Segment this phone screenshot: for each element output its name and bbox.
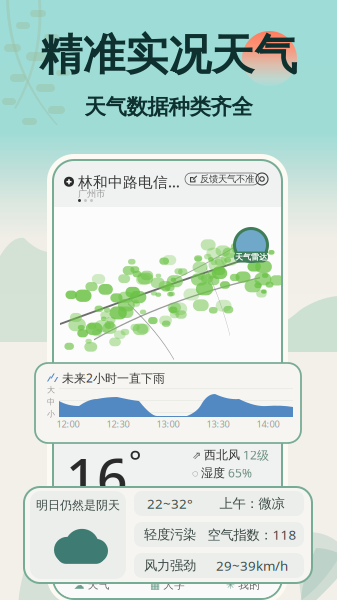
staticText: 林和中路电信… [78, 172, 180, 191]
button[interactable]: 风力强劲 [134, 553, 304, 578]
button[interactable]: 未来2小时一直下雨 [35, 363, 301, 443]
staticText: 大 [47, 385, 55, 395]
staticText: 反馈天气不准 [200, 173, 254, 185]
button[interactable]: 明日仍然是阴天 [30, 491, 126, 579]
button[interactable]: 林和中路电信… [64, 172, 180, 191]
button[interactable]: 设置 [255, 172, 269, 186]
staticText: 65% [228, 465, 252, 481]
button[interactable]: 反馈天气不准 [185, 173, 259, 185]
button[interactable]: ✳ [205, 572, 281, 598]
staticText: 13:30 [206, 418, 229, 430]
staticText: 12级 [243, 447, 269, 463]
button[interactable]: ▦ [130, 572, 205, 598]
staticText: 中 [47, 397, 55, 407]
staticText: 明日仍然是阴天 [36, 498, 120, 513]
staticText: 13:00 [156, 418, 179, 430]
staticText: 未来2小时一直下雨 [62, 370, 165, 386]
staticText: ° [129, 441, 142, 480]
staticText: 小 [47, 409, 55, 419]
staticText: 16 [66, 441, 128, 512]
staticText: 天气雷达 [235, 252, 267, 262]
staticText: 广州市 [78, 188, 105, 199]
staticText: ⇗ [192, 449, 201, 461]
staticText: 29~39km/h [216, 557, 288, 574]
staticText: 西北风 [204, 448, 240, 462]
button[interactable]: ☁ [54, 572, 130, 598]
staticText: ◌ [192, 466, 198, 480]
staticText: 我的 [238, 578, 260, 591]
staticText: 空气指数：118 [207, 526, 296, 543]
staticText: 湿度 [201, 465, 225, 480]
staticText: 风力强劲 [144, 557, 196, 574]
staticText: 上午：微凉 [219, 495, 284, 512]
staticText: 12:00 [56, 418, 79, 430]
staticText: ▦ [150, 579, 160, 591]
staticText: 14:00 [256, 418, 279, 430]
staticText: 天气数据种类齐全 [84, 94, 252, 120]
staticText: ✳ [226, 579, 235, 591]
button[interactable]: 轻度污染 [134, 522, 304, 547]
staticText: 精准实况天气 [39, 29, 297, 81]
button[interactable]: 22~32° [134, 491, 304, 516]
staticText: ☁ [74, 579, 85, 591]
staticText: 大字 [163, 578, 185, 591]
button[interactable]: 天气雷达 [232, 225, 270, 265]
staticText: 轻度污染 [144, 526, 196, 543]
staticText: 天气 [88, 578, 110, 591]
staticText: 12:30 [106, 418, 129, 430]
staticText: 22~32° [147, 495, 193, 512]
